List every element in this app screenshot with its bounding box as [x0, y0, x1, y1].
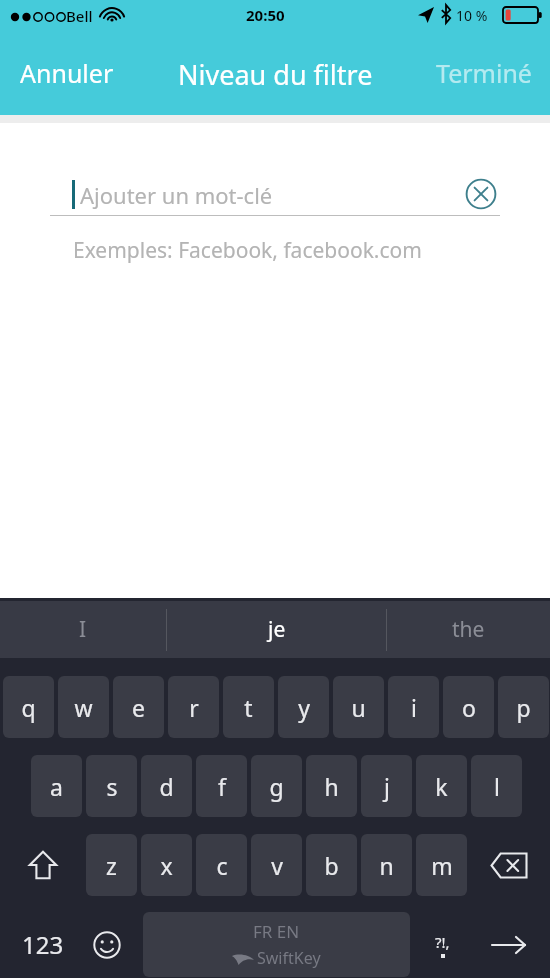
staticText: I: [79, 615, 87, 644]
button[interactable]: Backspace: [478, 834, 540, 896]
staticText: q: [21, 692, 36, 723]
button[interactable]: FR EN: [143, 912, 410, 977]
button[interactable]: v: [251, 834, 302, 896]
button[interactable]: je: [167, 601, 386, 658]
staticText: SwiftKey: [257, 947, 321, 969]
staticText: FR EN: [253, 920, 300, 943]
button[interactable]: f: [196, 755, 247, 817]
button[interactable]: w: [58, 676, 109, 738]
button[interactable]: n: [361, 834, 412, 896]
staticText: g: [269, 771, 284, 802]
button[interactable]: p: [498, 676, 549, 738]
staticText: Terminé: [436, 56, 532, 90]
button[interactable]: u: [333, 676, 384, 738]
button[interactable]: the: [387, 601, 550, 658]
staticText: f: [218, 771, 226, 802]
button[interactable]: c: [196, 834, 247, 896]
button[interactable]: o: [443, 676, 494, 738]
staticText: j: [384, 771, 390, 802]
staticText: x: [160, 850, 173, 881]
staticText: r: [189, 692, 199, 723]
staticText: Niveau du filtre: [178, 56, 373, 93]
button[interactable]: l: [471, 755, 522, 817]
button[interactable]: h: [306, 755, 357, 817]
staticText: z: [106, 850, 117, 881]
staticText: ?!,: [435, 932, 450, 952]
button[interactable]: Enter: [478, 912, 540, 977]
button[interactable]: g: [251, 755, 302, 817]
staticText: a: [50, 771, 63, 802]
staticText: Ajouter un mot-clé: [80, 180, 273, 210]
staticText: i: [411, 692, 417, 723]
button[interactable]: x: [141, 834, 192, 896]
staticText: y: [298, 692, 310, 723]
staticText: n: [379, 850, 394, 881]
button[interactable]: Shift: [14, 834, 72, 896]
button[interactable]: m: [416, 834, 467, 896]
button[interactable]: q: [3, 676, 54, 738]
staticText: h: [324, 771, 339, 802]
staticText: m: [431, 850, 453, 881]
staticText: e: [132, 692, 145, 723]
button[interactable]: s: [86, 755, 137, 817]
staticText: the: [452, 615, 485, 644]
staticText: 20:50: [246, 5, 285, 25]
button[interactable]: t: [223, 676, 274, 738]
button[interactable]: z: [86, 834, 137, 896]
button[interactable]: 123: [8, 912, 78, 977]
staticText: 123: [22, 928, 64, 961]
button[interactable]: Terminé: [436, 56, 532, 90]
staticText: k: [435, 771, 448, 802]
button[interactable]: y: [278, 676, 329, 738]
staticText: b: [324, 850, 339, 881]
button[interactable]: I: [0, 601, 166, 658]
button[interactable]: Clear text: [461, 174, 501, 214]
button[interactable]: i: [388, 676, 439, 738]
button[interactable]: d: [141, 755, 192, 817]
staticText: Exemples: Facebook, facebook.com: [73, 236, 422, 265]
staticText: u: [351, 692, 366, 723]
button[interactable]: Ajouter un mot-clé: [80, 180, 450, 210]
staticText: p: [516, 692, 531, 723]
button[interactable]: Annuler: [20, 56, 114, 90]
staticText: d: [159, 771, 174, 802]
staticText: c: [216, 850, 228, 881]
staticText: t: [244, 692, 253, 723]
button[interactable]: k: [416, 755, 467, 817]
button[interactable]: r: [168, 676, 219, 738]
button[interactable]: j: [361, 755, 412, 817]
staticText: Bell: [66, 6, 93, 26]
button[interactable]: a: [31, 755, 82, 817]
staticText: 10 %: [456, 6, 488, 25]
staticText: v: [271, 850, 283, 881]
staticText: o: [462, 692, 476, 723]
staticText: s: [106, 771, 118, 802]
button[interactable]: e: [113, 676, 164, 738]
staticText: l: [494, 771, 500, 802]
staticText: Annuler: [20, 56, 114, 90]
button[interactable]: Punctuation: [412, 912, 472, 977]
button[interactable]: Emoji: [78, 912, 136, 977]
button[interactable]: b: [306, 834, 357, 896]
staticText: je: [268, 615, 286, 644]
staticText: w: [74, 692, 93, 723]
